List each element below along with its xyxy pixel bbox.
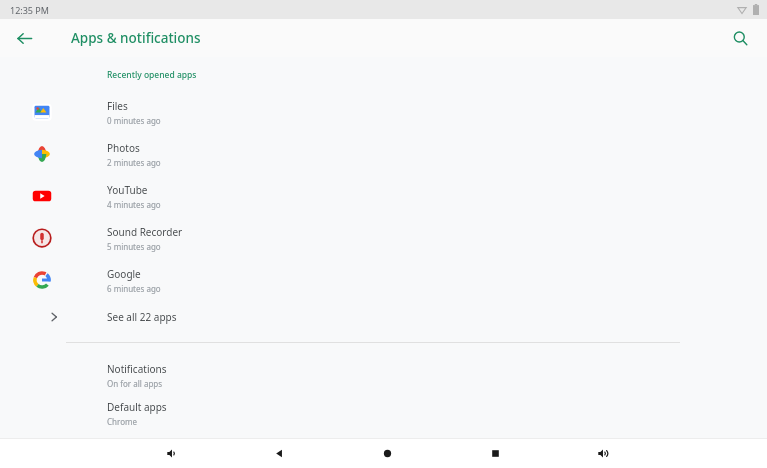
button[interactable]: Search: [723, 21, 757, 55]
staticText: Default apps: [107, 400, 167, 414]
staticText: Sound Recorder: [107, 225, 183, 239]
staticText: YouTube: [107, 183, 148, 197]
button[interactable]: Recents: [478, 438, 512, 468]
staticText: Photos: [107, 141, 140, 155]
staticText: 12:35 PM: [10, 4, 49, 16]
button[interactable]: Advanced: [0, 432, 767, 468]
staticText: Chrome: [107, 416, 137, 427]
staticText: Notifications: [107, 362, 167, 376]
button[interactable]: Volume down: [155, 438, 189, 468]
staticText: See all 22 apps: [107, 310, 177, 324]
button[interactable]: Volume up: [586, 438, 620, 468]
button[interactable]: Files: [0, 91, 767, 133]
button[interactable]: Photos: [0, 133, 767, 175]
button[interactable]: Back: [6, 20, 42, 56]
staticText: 2 minutes ago: [107, 157, 161, 168]
button[interactable]: Sound Recorder: [0, 217, 767, 259]
staticText: 6 minutes ago: [107, 283, 161, 294]
staticText: Apps & notifications: [71, 29, 201, 47]
button[interactable]: Back: [262, 438, 296, 468]
button[interactable]: Notifications: [0, 356, 767, 394]
staticText: 0 minutes ago: [107, 115, 161, 126]
staticText: 5 minutes ago: [107, 241, 161, 252]
button[interactable]: Home: [370, 438, 404, 468]
staticText: Files: [107, 99, 128, 113]
staticText: Google: [107, 267, 141, 281]
button[interactable]: Default apps: [0, 394, 767, 432]
button[interactable]: See all 22 apps: [0, 301, 767, 333]
staticText: On for all apps: [107, 378, 163, 389]
button[interactable]: YouTube: [0, 175, 767, 217]
staticText: 4 minutes ago: [107, 199, 161, 210]
button[interactable]: Google: [0, 259, 767, 301]
staticText: Recently opened apps: [107, 69, 197, 81]
